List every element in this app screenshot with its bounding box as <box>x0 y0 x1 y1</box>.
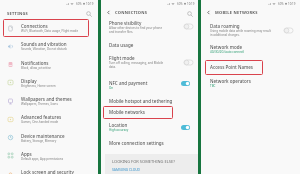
staticText: Data usage <box>109 42 134 48</box>
staticText: Using mobile data while roaming may resu… <box>210 29 271 37</box>
staticText: Display <box>21 78 37 84</box>
staticText: More connection settings <box>109 140 164 146</box>
button[interactable]: Switch off <box>184 60 193 65</box>
staticText: Brightness, Home screen <box>21 84 56 88</box>
staticText: Mobile hotspot and tethering <box>109 98 173 104</box>
button[interactable]: Back <box>204 8 213 17</box>
button[interactable]: Mobile hotspot and tethering <box>107 96 187 108</box>
staticText: LOOKING FOR SOMETHING ELSE? <box>112 159 175 164</box>
staticText: SETTINGS <box>7 11 29 16</box>
staticText: NFC and payment <box>109 80 148 86</box>
staticText: MOBILE NETWORKS <box>215 10 258 15</box>
staticText: 60% <box>278 2 284 6</box>
staticText: Notifications <box>21 60 49 66</box>
staticText: High accuracy <box>109 128 129 132</box>
button[interactable]: Data usage <box>107 40 187 52</box>
button[interactable]: Display <box>19 76 93 90</box>
staticText: Sounds, Vibration, Do not disturb <box>21 47 67 51</box>
button[interactable]: Network operators <box>208 76 288 91</box>
button[interactable]: Access Point Names <box>208 62 288 74</box>
button[interactable]: Mobile networks <box>107 107 187 119</box>
staticText: Allow other devices to find your phone a… <box>109 26 163 34</box>
button[interactable]: NFC and payment <box>107 78 177 93</box>
staticText: Battery, Storage, Memory <box>21 139 57 143</box>
button[interactable]: Wallpapers and themes <box>19 94 93 108</box>
button[interactable]: Advanced features <box>19 112 93 126</box>
button[interactable]: Search <box>84 9 93 18</box>
staticText: Apps <box>21 151 32 157</box>
staticText: Mobile networks <box>109 109 145 115</box>
button[interactable]: Lock screen and security <box>19 167 93 174</box>
button[interactable]: More connection settings <box>107 138 187 150</box>
staticText: 60% <box>76 2 82 6</box>
staticText: Network operators <box>210 78 251 84</box>
staticText: TBC <box>210 84 216 88</box>
staticText: Wallpapers, Themes, Icons <box>21 102 58 106</box>
staticText: Wallpapers and themes <box>21 96 72 102</box>
button[interactable]: Notifications <box>19 58 93 72</box>
button[interactable]: Switch off <box>184 24 193 29</box>
button[interactable]: Network mode <box>208 42 288 57</box>
staticText: Block, allow, prioritise <box>21 66 52 70</box>
button[interactable]: LOOKING FOR SOMETHING ELSE? <box>105 154 199 174</box>
staticText: Access Point Names <box>210 64 254 70</box>
button[interactable]: Search <box>185 9 194 18</box>
staticText: 4G/3G/2G (auto connect) <box>210 50 245 54</box>
staticText: Phone visibility <box>109 20 142 26</box>
staticText: Games, One-handed mode <box>21 120 59 124</box>
staticText: 10:19 <box>288 2 296 6</box>
staticText: Connections <box>21 23 48 29</box>
staticText: Flight mode <box>109 55 135 61</box>
staticText: Location <box>109 122 128 128</box>
staticText: Advanced features <box>21 114 62 120</box>
staticText: 10:19 <box>187 2 195 6</box>
staticText: Device maintenance <box>21 133 65 139</box>
staticText: Network mode <box>210 44 243 50</box>
staticText: Sounds and vibration <box>21 41 67 47</box>
button[interactable]: Phone visibility <box>107 18 177 36</box>
staticText: 10:19 <box>86 2 94 6</box>
staticText: Turn off calling, messaging, and Mobile … <box>109 61 164 69</box>
staticText: Default apps, App permissions <box>21 157 64 161</box>
button[interactable]: Back <box>104 8 113 17</box>
button[interactable]: Switch on <box>181 125 190 130</box>
button[interactable]: Flight mode <box>107 53 177 71</box>
button[interactable]: Switch off <box>284 28 293 33</box>
button[interactable]: Data roaming <box>208 21 278 39</box>
button[interactable]: Switch on <box>181 81 190 86</box>
staticText: 60% <box>177 2 183 6</box>
button[interactable]: Location <box>107 120 177 135</box>
staticText: On <box>109 86 114 90</box>
staticText: SAMSUNG CLOUD <box>112 167 141 171</box>
staticText: Data roaming <box>210 23 240 29</box>
staticText: Wi-Fi, Bluetooth, Data usage, Flight mod… <box>21 29 79 33</box>
staticText: CONNECTIONS <box>115 10 148 15</box>
button[interactable]: Connections <box>19 21 93 35</box>
button[interactable]: Sounds and vibration <box>19 39 93 53</box>
button[interactable]: Device maintenance <box>19 131 93 145</box>
button[interactable]: Apps <box>19 149 93 163</box>
staticText: Lock screen and security <box>21 169 74 174</box>
